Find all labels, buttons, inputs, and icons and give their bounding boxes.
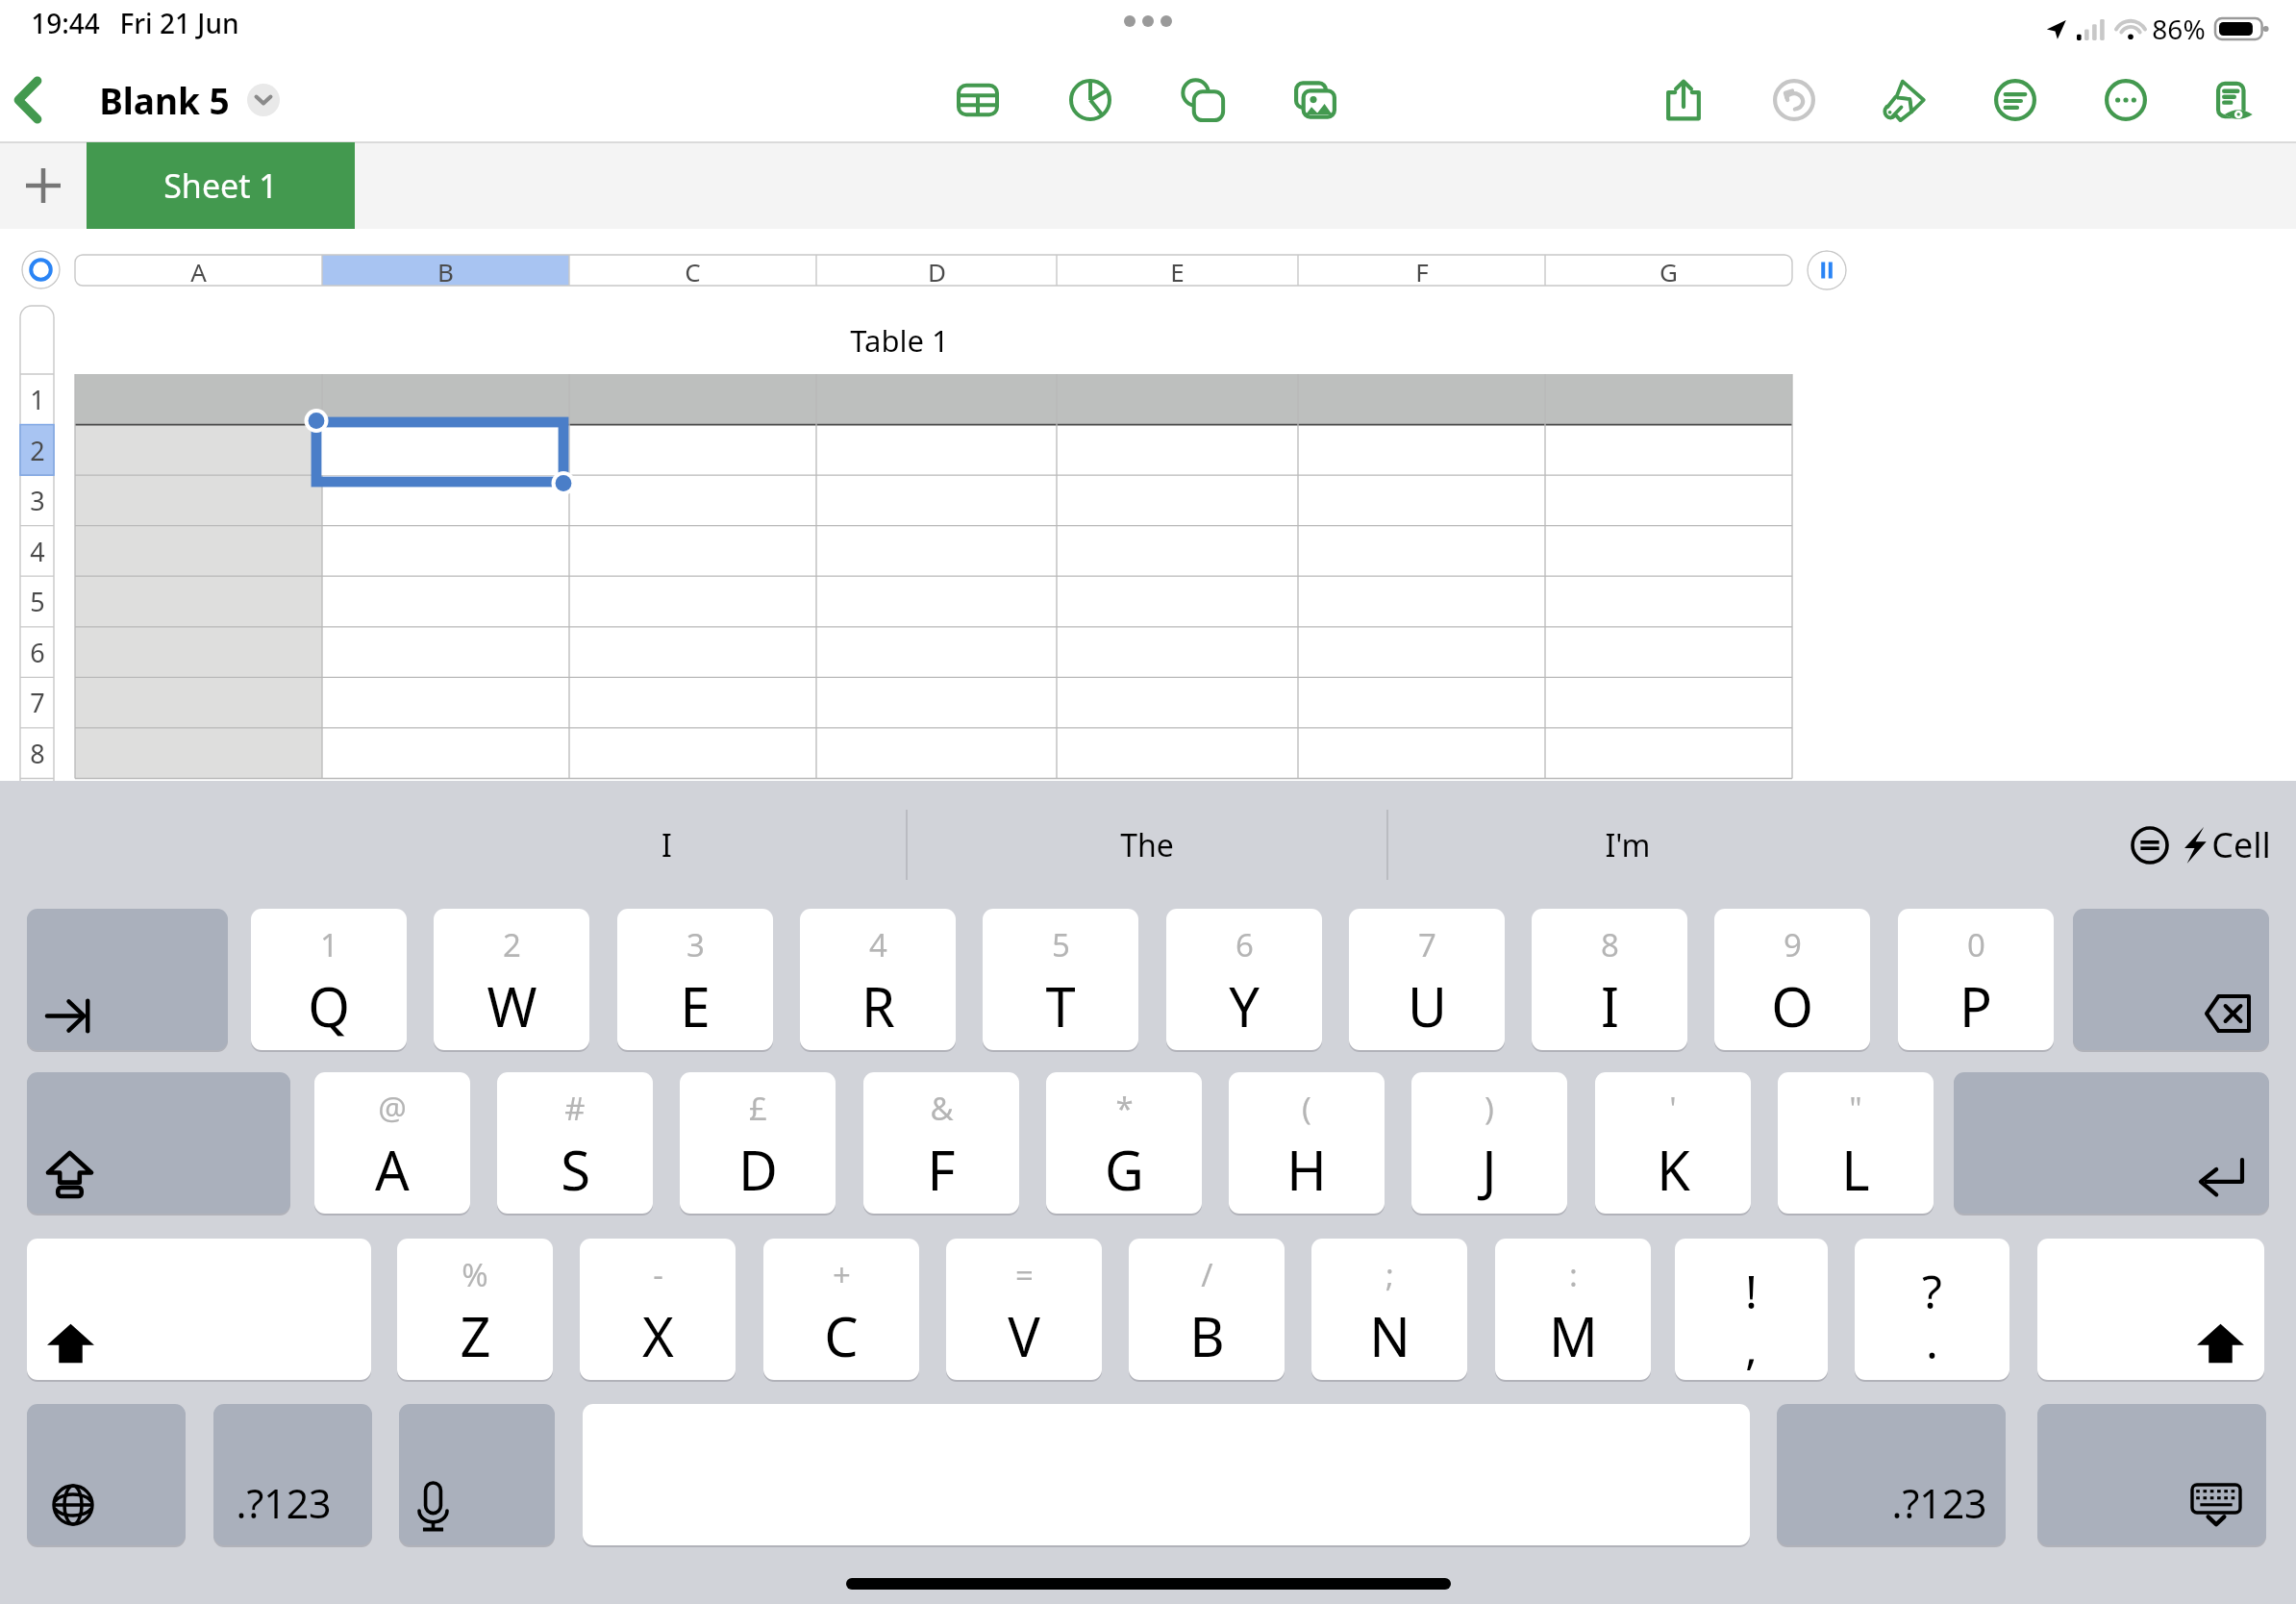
button[interactable]: +	[763, 1239, 919, 1380]
button[interactable]: Shift	[27, 1239, 371, 1380]
button[interactable]: -	[580, 1239, 736, 1380]
button[interactable]: Insert media	[1293, 71, 1337, 129]
button[interactable]: Delete	[2073, 909, 2269, 1050]
button[interactable]: 4	[20, 526, 54, 577]
button[interactable]: 3	[617, 909, 773, 1050]
button[interactable]: Dictate	[399, 1404, 555, 1545]
button[interactable]: =	[946, 1239, 1102, 1380]
button[interactable]: Caps lock	[27, 1072, 290, 1214]
button[interactable]: "	[1778, 1072, 1934, 1214]
button[interactable]: B	[322, 255, 569, 286]
button[interactable]: Insert table	[956, 71, 1000, 129]
button[interactable]: 5	[983, 909, 1138, 1050]
button[interactable]: 2	[434, 909, 589, 1050]
staticText: ,	[1745, 1316, 1758, 1378]
button[interactable]: £	[680, 1072, 836, 1214]
staticText: =	[1015, 1253, 1034, 1296]
button[interactable]: Pause	[1807, 250, 1847, 290]
button[interactable]: %	[397, 1239, 553, 1380]
button[interactable]: :	[1495, 1239, 1651, 1380]
button[interactable]: 4	[800, 909, 956, 1050]
button[interactable]: Add sheet	[0, 142, 87, 229]
button[interactable]: Hide keyboard	[2037, 1404, 2266, 1545]
staticText: 9	[1784, 923, 1802, 966]
staticText: W	[487, 969, 537, 1042]
button[interactable]: ;	[1311, 1239, 1467, 1380]
button[interactable]: 9	[1714, 909, 1870, 1050]
button[interactable]: *	[1046, 1072, 1202, 1214]
button[interactable]: Collaborate	[2214, 71, 2259, 129]
button[interactable]: Insert shape	[1181, 71, 1225, 129]
button[interactable]: Format	[1883, 71, 1927, 129]
button[interactable]: Return	[1954, 1072, 2269, 1214]
staticText: Blank 5	[99, 76, 230, 124]
button[interactable]: F	[1298, 255, 1545, 286]
button[interactable]: 8	[20, 728, 54, 779]
staticText: I	[661, 824, 672, 866]
button[interactable]: I'm	[1387, 781, 1868, 909]
staticText: 1	[320, 923, 338, 966]
button[interactable]: .?123	[1777, 1404, 2006, 1545]
button[interactable]: 6	[1166, 909, 1322, 1050]
button[interactable]: 0	[1898, 909, 2054, 1050]
button[interactable]: D	[816, 255, 1057, 286]
button[interactable]: Exclamation	[1675, 1239, 1828, 1380]
button[interactable]: 3	[20, 475, 54, 526]
button[interactable]: '	[1595, 1072, 1751, 1214]
staticText: 2	[30, 433, 45, 468]
button[interactable]: Insert chart	[1068, 71, 1112, 129]
button[interactable]: G	[1545, 255, 1792, 286]
staticText: N	[1369, 1299, 1410, 1372]
button[interactable]: &	[863, 1072, 1019, 1214]
staticText: U	[1408, 969, 1447, 1042]
staticText: T	[1045, 969, 1076, 1042]
staticText: D	[928, 255, 946, 286]
button[interactable]: Select all	[21, 250, 61, 289]
button[interactable]: E	[1057, 255, 1298, 286]
staticText: L	[1841, 1133, 1870, 1206]
button[interactable]: )	[1411, 1072, 1567, 1214]
button[interactable]: Next keyboard	[27, 1404, 186, 1545]
button[interactable]: 1	[20, 374, 54, 425]
staticText: !	[1745, 1260, 1758, 1312]
button[interactable]: Tab	[27, 909, 228, 1050]
staticText: 7	[1418, 923, 1436, 966]
button[interactable]: #	[497, 1072, 653, 1214]
staticText: )	[1485, 1087, 1494, 1130]
staticText: .	[1926, 1310, 1938, 1372]
button[interactable]: 5	[20, 576, 54, 627]
staticText: /	[1201, 1253, 1213, 1296]
button[interactable]: @	[314, 1072, 470, 1214]
staticText: J	[1482, 1133, 1497, 1206]
button[interactable]: I	[426, 781, 907, 909]
button[interactable]: (	[1229, 1072, 1385, 1214]
button[interactable]: Organize	[1993, 71, 2037, 129]
button[interactable]: 1	[251, 909, 407, 1050]
button[interactable]: Undo	[1772, 71, 1816, 129]
button[interactable]: 7	[20, 677, 54, 728]
staticText: 8	[1601, 923, 1619, 966]
button[interactable]: .?123	[213, 1404, 372, 1545]
button[interactable]: Question mark	[1855, 1239, 2009, 1380]
button[interactable]: 2	[20, 425, 54, 476]
staticText: .?123	[236, 1476, 332, 1530]
button[interactable]: C	[569, 255, 816, 286]
button[interactable]: 7	[1349, 909, 1505, 1050]
button[interactable]: Share	[1661, 71, 1706, 129]
button[interactable]: Back	[0, 62, 56, 138]
staticText: 8	[30, 736, 45, 771]
button[interactable]: Shift	[2037, 1239, 2264, 1380]
button[interactable]: More	[2104, 71, 2148, 129]
button[interactable]: /	[1129, 1239, 1285, 1380]
button[interactable]: 8	[1532, 909, 1687, 1050]
button[interactable]: Sheet 1	[87, 142, 355, 229]
button[interactable]: A	[75, 255, 322, 286]
staticText: C	[685, 255, 701, 286]
staticText: A	[375, 1133, 410, 1206]
staticText: 6	[1235, 923, 1254, 966]
button[interactable]: 6	[20, 627, 54, 678]
button[interactable]: The	[907, 781, 1387, 909]
button[interactable]: Blank 5	[99, 76, 280, 124]
button[interactable]: Cell	[2131, 821, 2271, 868]
